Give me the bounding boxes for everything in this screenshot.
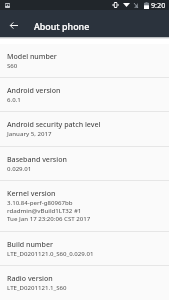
staticText: January 5, 2017 [7, 129, 52, 137]
staticText: 6.0.1 [7, 95, 21, 103]
staticText: Baseband version [7, 154, 67, 164]
staticText: Kernel version [7, 188, 56, 198]
button[interactable]: Radio version [0, 266, 169, 300]
staticText: Android security patch level [7, 119, 101, 129]
button[interactable]: Baseband version [0, 147, 169, 180]
button[interactable]: Android security patch level [0, 112, 169, 146]
staticText: Model number [7, 51, 57, 61]
staticText: 0.029.01 [7, 164, 32, 172]
staticText: Android version [7, 85, 61, 95]
staticText: Radio version [7, 273, 53, 283]
staticText: About phone [34, 20, 90, 32]
button[interactable]: Navigate up [4, 15, 24, 35]
staticText: 3.10.84-perf-g80967bb [7, 198, 73, 206]
staticText: LTE_D0201121.1_S60 [7, 283, 67, 291]
staticText: Tue Jan 17 23:20:06 CST 2017 [7, 214, 91, 222]
staticText: LTE_D0201121.0_S60_0.029.01 [7, 249, 94, 257]
staticText: Build number [7, 239, 53, 249]
staticText: rdadmin@vBuild1LT32 #1 [7, 206, 82, 214]
button[interactable]: Build number [0, 232, 169, 265]
button[interactable]: Android version [0, 78, 169, 111]
button[interactable]: Kernel version [0, 181, 169, 231]
button[interactable]: Model number [0, 44, 169, 77]
staticText: S60 [7, 61, 18, 69]
staticText: 9:20 [151, 0, 166, 10]
